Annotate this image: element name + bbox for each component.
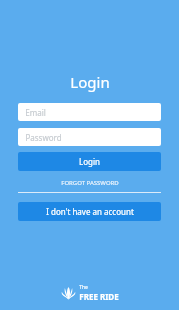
staticText: FREE RIDE bbox=[79, 291, 119, 302]
staticText: Login bbox=[70, 72, 110, 92]
other: The Free Ride logo bbox=[61, 287, 76, 300]
staticText: Password bbox=[25, 132, 62, 143]
staticText: I don't have an account bbox=[46, 206, 134, 217]
staticText: The bbox=[79, 284, 88, 291]
staticText: FORGOT PASSWORD bbox=[61, 179, 119, 187]
staticText: Login bbox=[79, 156, 100, 167]
button[interactable]: I don't have an account bbox=[18, 202, 161, 221]
button[interactable]: Login bbox=[18, 152, 161, 171]
button[interactable]: Password bbox=[18, 128, 161, 146]
staticText: Email bbox=[25, 107, 46, 118]
button[interactable]: FORGOT PASSWORD bbox=[18, 178, 161, 188]
button[interactable]: Email bbox=[18, 103, 161, 121]
